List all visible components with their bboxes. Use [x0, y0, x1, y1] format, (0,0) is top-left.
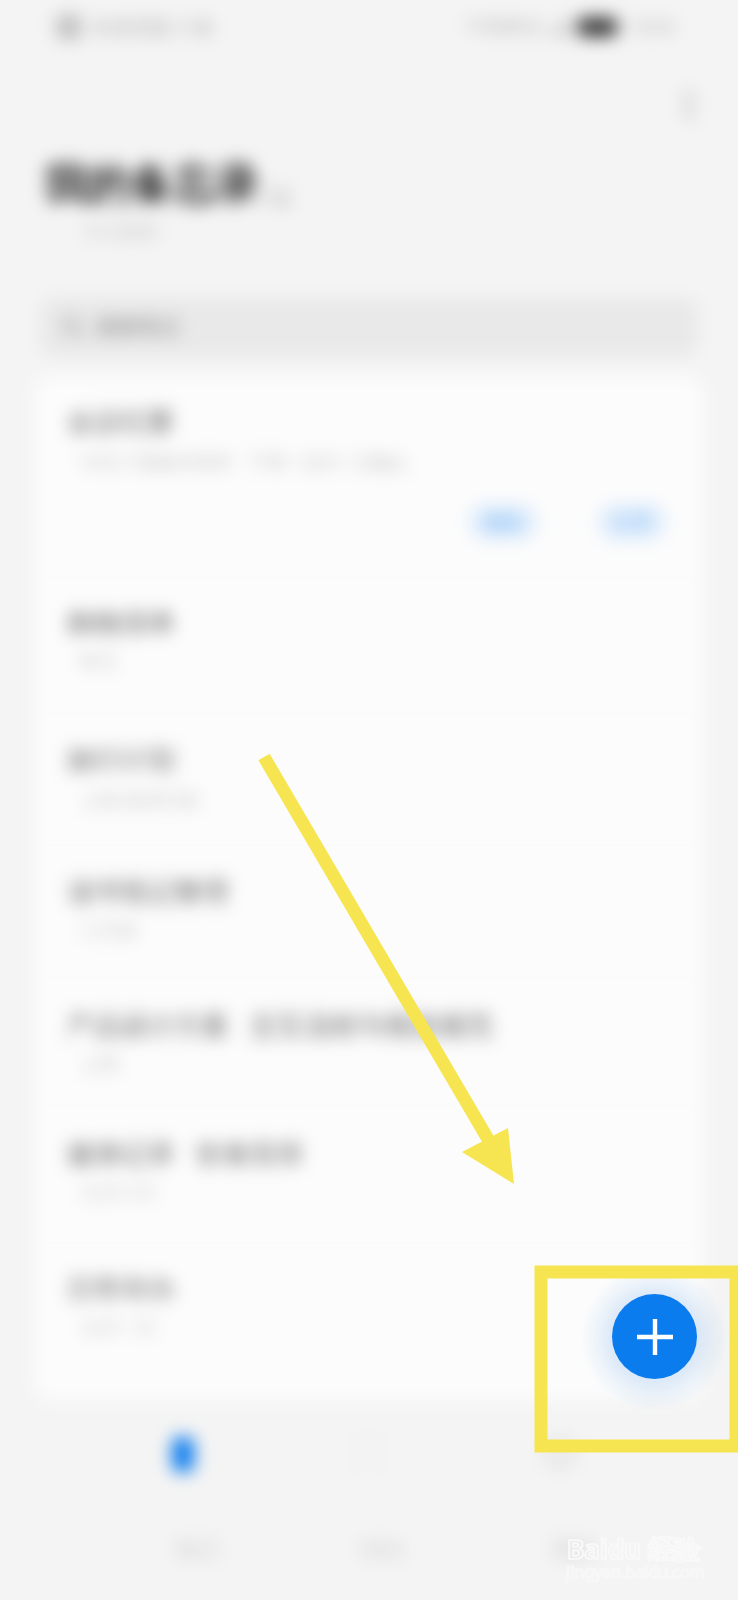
button[interactable]: 产品设计方案 交互流程与视觉规范	[34, 977, 704, 1105]
staticText: 日常待办	[67, 1272, 175, 1306]
staticText: 我的备忘录	[44, 158, 259, 212]
button[interactable]: 编辑	[468, 503, 538, 541]
staticText: 未读消息 3 条	[92, 13, 214, 40]
staticText: 购物清单	[67, 606, 175, 640]
button[interactable]: 旅行计划	[34, 714, 704, 846]
button[interactable]: 分享	[597, 503, 667, 541]
staticText: 产品设计方案 交互流程与视觉规范	[67, 1006, 494, 1043]
staticText: 分享	[612, 510, 652, 535]
button[interactable]: 健身记录 饮食安排	[34, 1105, 704, 1243]
staticText: 搜索笔记	[96, 314, 180, 340]
staticText: 我的	[552, 1536, 596, 1564]
button[interactable]: 购物清单	[34, 577, 704, 714]
button[interactable]: 读书笔记整理	[34, 846, 704, 977]
staticText: 编辑	[483, 510, 523, 535]
staticText: 读书笔记整理	[67, 875, 229, 909]
staticText: Baidu 经验	[567, 1531, 700, 1567]
button[interactable]: Add note	[612, 1294, 697, 1379]
button[interactable]: 日常待办	[34, 1243, 704, 1400]
staticText: 会议纪要	[67, 405, 175, 439]
button[interactable]: 笔记	[111, 1426, 255, 1596]
staticText: 12	[264, 181, 291, 212]
button[interactable]: 我的	[488, 1426, 632, 1596]
button[interactable]: 会议纪要	[34, 376, 704, 577]
staticText: 旅行计划	[67, 743, 175, 777]
button[interactable]: 搜索笔记	[40, 298, 698, 356]
staticText: 健身记录 饮食安排	[67, 1134, 305, 1171]
